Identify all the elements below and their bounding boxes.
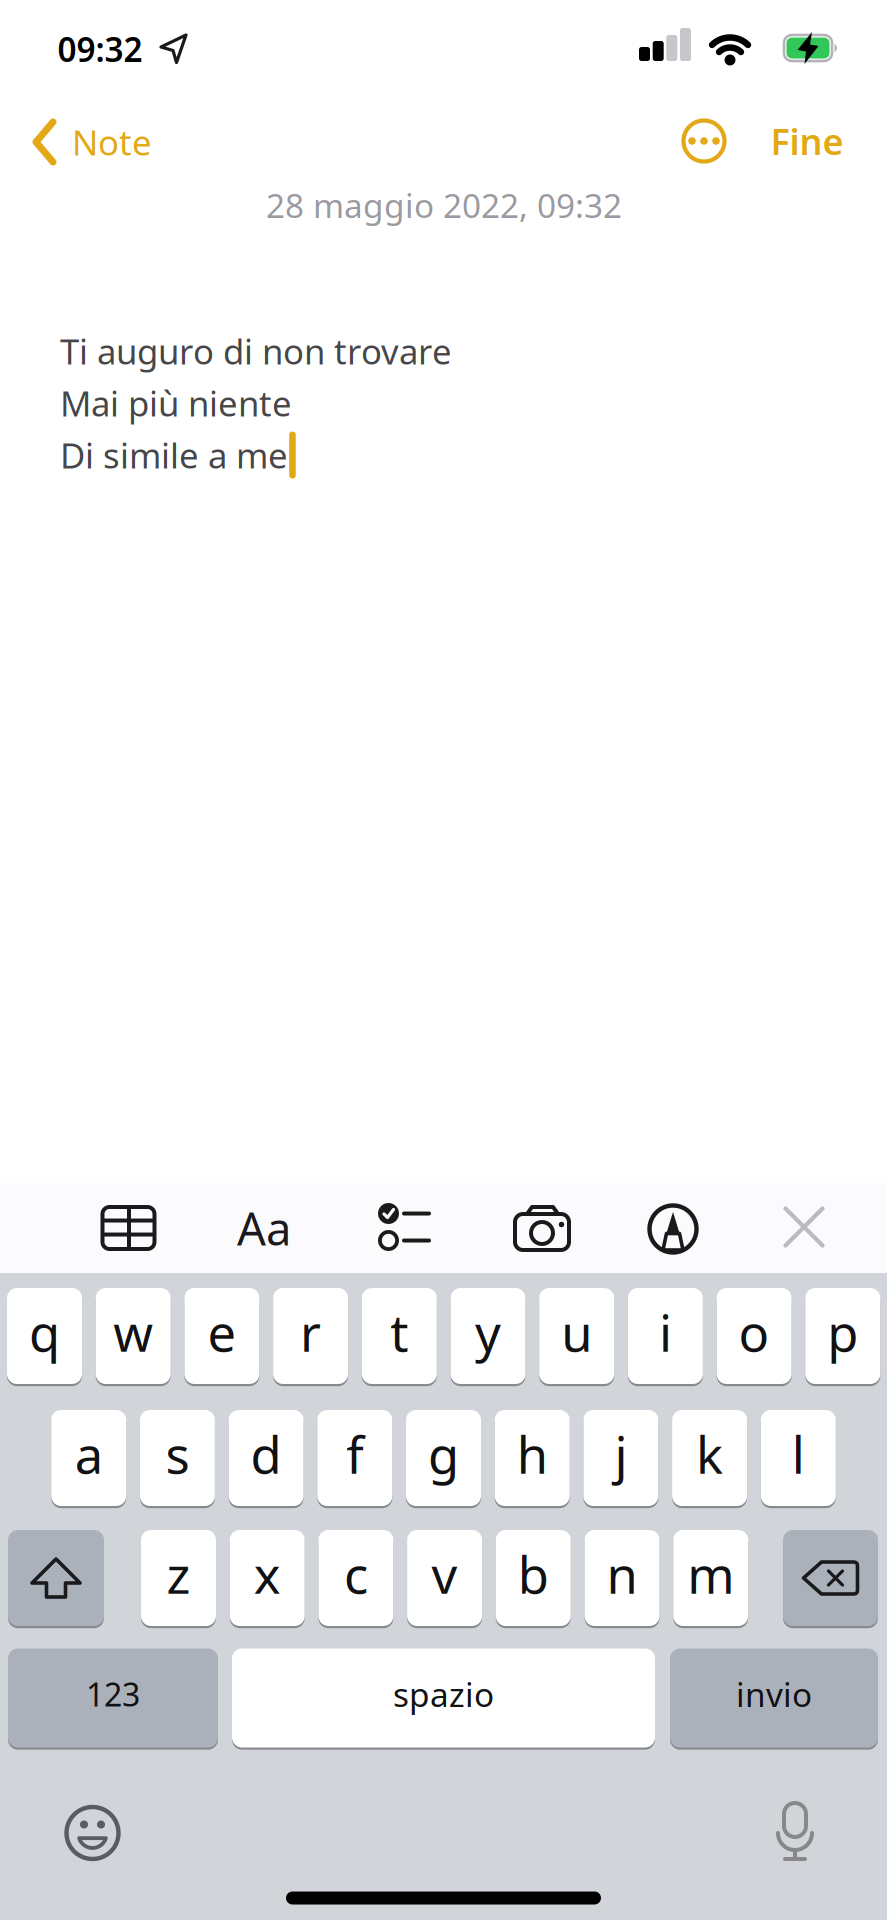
staticText: w: [113, 1298, 153, 1366]
staticText: j: [614, 1420, 627, 1488]
staticText: spazio: [393, 1672, 494, 1716]
staticText: b: [518, 1540, 549, 1608]
button[interactable]: o: [717, 1286, 792, 1385]
button[interactable]: [681, 118, 726, 163]
staticText: Mai più niente: [60, 380, 292, 426]
staticText: Note: [72, 119, 152, 165]
staticText: f: [346, 1420, 363, 1488]
button[interactable]: [773, 1801, 817, 1863]
button[interactable]: v: [407, 1528, 482, 1627]
button[interactable]: c: [318, 1528, 393, 1627]
staticText: u: [561, 1298, 592, 1366]
staticText: t: [390, 1298, 408, 1366]
button[interactable]: d: [229, 1408, 304, 1507]
button[interactable]: g: [406, 1408, 481, 1507]
button[interactable]: [785, 1208, 822, 1245]
button[interactable]: n: [584, 1528, 659, 1627]
button[interactable]: z: [141, 1528, 216, 1627]
button[interactable]: r: [273, 1286, 348, 1385]
button[interactable]: h: [495, 1408, 570, 1507]
staticText: z: [166, 1540, 190, 1608]
staticText: Di simile a me: [60, 432, 288, 478]
button[interactable]: spazio: [232, 1647, 655, 1749]
button[interactable]: t: [362, 1286, 437, 1385]
button[interactable]: [102, 1207, 154, 1249]
button[interactable]: [783, 1528, 878, 1627]
staticText: invio: [736, 1672, 812, 1716]
button[interactable]: x: [230, 1528, 305, 1627]
staticText: y: [475, 1298, 501, 1366]
staticText: o: [739, 1298, 770, 1366]
staticText: s: [165, 1420, 189, 1488]
button[interactable]: Aa: [237, 1198, 291, 1258]
staticText: 123: [86, 1673, 140, 1715]
button[interactable]: l: [761, 1408, 836, 1507]
button[interactable]: p: [805, 1286, 880, 1385]
staticText: i: [659, 1298, 672, 1366]
button[interactable]: u: [539, 1286, 614, 1385]
staticText: p: [827, 1298, 858, 1366]
staticText: Fine: [770, 117, 843, 165]
staticText: g: [428, 1420, 459, 1488]
button[interactable]: y: [450, 1286, 525, 1385]
button[interactable]: s: [140, 1408, 215, 1507]
button[interactable]: 123: [8, 1647, 218, 1749]
button[interactable]: f: [317, 1408, 392, 1507]
button[interactable]: m: [673, 1528, 748, 1627]
button[interactable]: j: [583, 1408, 658, 1507]
button[interactable]: [513, 1205, 571, 1251]
staticText: Ti auguro di non trovare: [60, 328, 452, 374]
staticText: h: [517, 1420, 548, 1488]
staticText: d: [251, 1420, 282, 1488]
staticText: e: [207, 1298, 236, 1366]
button[interactable]: e: [184, 1286, 259, 1385]
staticText: l: [792, 1420, 805, 1488]
button[interactable]: a: [51, 1408, 126, 1507]
staticText: a: [75, 1420, 103, 1488]
button[interactable]: w: [96, 1286, 171, 1385]
staticText: 28 maggio 2022, 09:32: [266, 183, 622, 227]
staticText: m: [687, 1540, 734, 1608]
button[interactable]: [63, 1804, 121, 1862]
staticText: 09:32: [57, 27, 142, 71]
button[interactable]: [647, 1203, 699, 1255]
button[interactable]: Fine: [770, 117, 843, 165]
staticText: x: [254, 1540, 281, 1608]
button[interactable]: invio: [670, 1647, 878, 1749]
button[interactable]: Note: [32, 119, 152, 165]
staticText: r: [300, 1298, 321, 1366]
staticText: q: [29, 1298, 60, 1366]
button[interactable]: i: [628, 1286, 703, 1385]
staticText: v: [432, 1540, 458, 1608]
staticText: k: [696, 1420, 723, 1488]
button[interactable]: q: [7, 1286, 82, 1385]
button[interactable]: b: [496, 1528, 571, 1627]
staticText: n: [606, 1540, 637, 1608]
button[interactable]: [8, 1528, 104, 1627]
staticText: c: [344, 1540, 368, 1608]
button[interactable]: k: [672, 1408, 747, 1507]
button[interactable]: [378, 1203, 430, 1251]
staticText: Aa: [237, 1198, 291, 1258]
